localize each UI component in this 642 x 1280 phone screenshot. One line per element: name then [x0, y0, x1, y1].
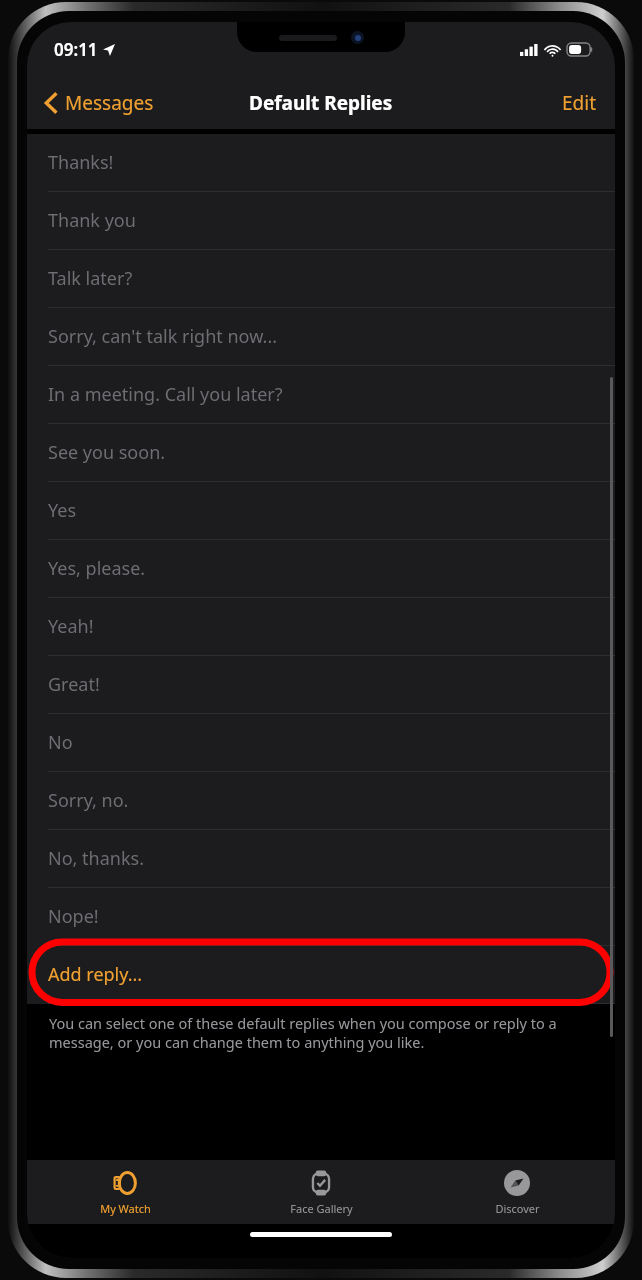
- staticText: Thanks!: [48, 150, 114, 175]
- staticText: Add reply...: [48, 962, 143, 987]
- button[interactable]: See you soon.: [27, 424, 615, 482]
- button[interactable]: In a meeting. Call you later?: [27, 366, 615, 424]
- button[interactable]: Thanks!: [27, 134, 615, 192]
- staticText: Sorry, can't talk right now...: [48, 324, 278, 349]
- staticText: No: [48, 730, 73, 755]
- button[interactable]: Sorry, can't talk right now...: [27, 308, 615, 366]
- staticText: Nope!: [48, 904, 99, 929]
- staticText: Messages: [65, 90, 154, 116]
- button[interactable]: Messages: [27, 81, 164, 125]
- staticText: Great!: [48, 672, 100, 697]
- button[interactable]: Talk later?: [27, 250, 615, 308]
- staticText: Yeah!: [48, 614, 94, 639]
- button[interactable]: No, thanks.: [27, 830, 615, 888]
- staticText: My Watch: [100, 1201, 151, 1216]
- button[interactable]: Yes, please.: [27, 540, 615, 598]
- staticText: Discover: [495, 1201, 540, 1216]
- staticText: 09:11: [54, 38, 98, 61]
- staticText: Yes: [48, 498, 77, 523]
- button[interactable]: Discover: [419, 1160, 615, 1224]
- button[interactable]: No: [27, 714, 615, 772]
- button[interactable]: Edit: [544, 81, 615, 125]
- staticText: You can select one of these default repl…: [49, 1013, 595, 1052]
- staticText: Yes, please.: [48, 556, 146, 581]
- button[interactable]: Nope!: [27, 888, 615, 946]
- staticText: Edit: [562, 90, 597, 116]
- staticText: In a meeting. Call you later?: [48, 382, 283, 407]
- staticText: Thank you: [48, 208, 136, 233]
- staticText: Talk later?: [48, 266, 133, 291]
- button[interactable]: Thank you: [27, 192, 615, 250]
- button[interactable]: Yeah!: [27, 598, 615, 656]
- button[interactable]: Face Gallery: [223, 1160, 419, 1224]
- staticText: See you soon.: [48, 440, 166, 465]
- button[interactable]: Great!: [27, 656, 615, 714]
- staticText: No, thanks.: [48, 846, 144, 871]
- button[interactable]: Sorry, no.: [27, 772, 615, 830]
- staticText: Default Replies: [249, 90, 393, 116]
- staticText: Sorry, no.: [48, 788, 129, 813]
- button[interactable]: Yes: [27, 482, 615, 540]
- button[interactable]: Add reply...: [27, 946, 615, 1004]
- button[interactable]: My Watch: [27, 1160, 223, 1224]
- staticText: Face Gallery: [290, 1201, 353, 1216]
